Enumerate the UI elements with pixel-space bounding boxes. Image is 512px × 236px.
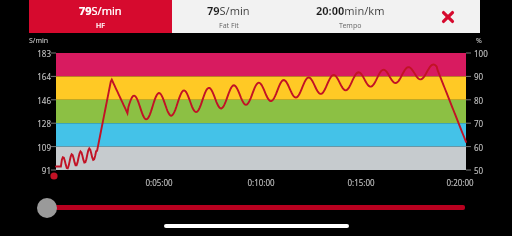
button[interactable]: Seek: [37, 198, 57, 218]
button[interactable]: Close: [415, 0, 480, 33]
button[interactable]: [48, 205, 465, 210]
staticText: 0:20:00: [438, 177, 482, 188]
staticText: S/min: [29, 36, 49, 46]
staticText: 0:05:00: [137, 177, 181, 188]
staticText: %: [476, 36, 482, 46]
staticText: 20:00min/km: [316, 3, 385, 18]
staticText: 79S/min: [207, 3, 250, 18]
staticText: 164: [25, 71, 51, 82]
button[interactable]: 79S/min: [172, 0, 285, 33]
staticText: 80: [474, 95, 504, 106]
staticText: 50: [474, 165, 504, 176]
staticText: 183: [25, 48, 51, 59]
button[interactable]: 79S/min: [29, 0, 172, 33]
staticText: 79S/min: [79, 3, 122, 18]
staticText: 0:15:00: [339, 177, 383, 188]
staticText: 60: [474, 142, 504, 153]
staticText: 109: [25, 142, 51, 153]
staticText: 90: [474, 71, 504, 82]
button[interactable]: 20:00min/km: [285, 0, 415, 33]
staticText: Tempo: [339, 21, 362, 31]
staticText: 100: [474, 48, 504, 59]
staticText: 70: [474, 118, 504, 129]
staticText: Fat Fit: [219, 21, 239, 31]
staticText: 0:10:00: [239, 177, 283, 188]
staticText: 146: [25, 95, 51, 106]
staticText: HF: [96, 21, 105, 31]
staticText: 91: [25, 165, 51, 176]
staticText: 128: [25, 118, 51, 129]
